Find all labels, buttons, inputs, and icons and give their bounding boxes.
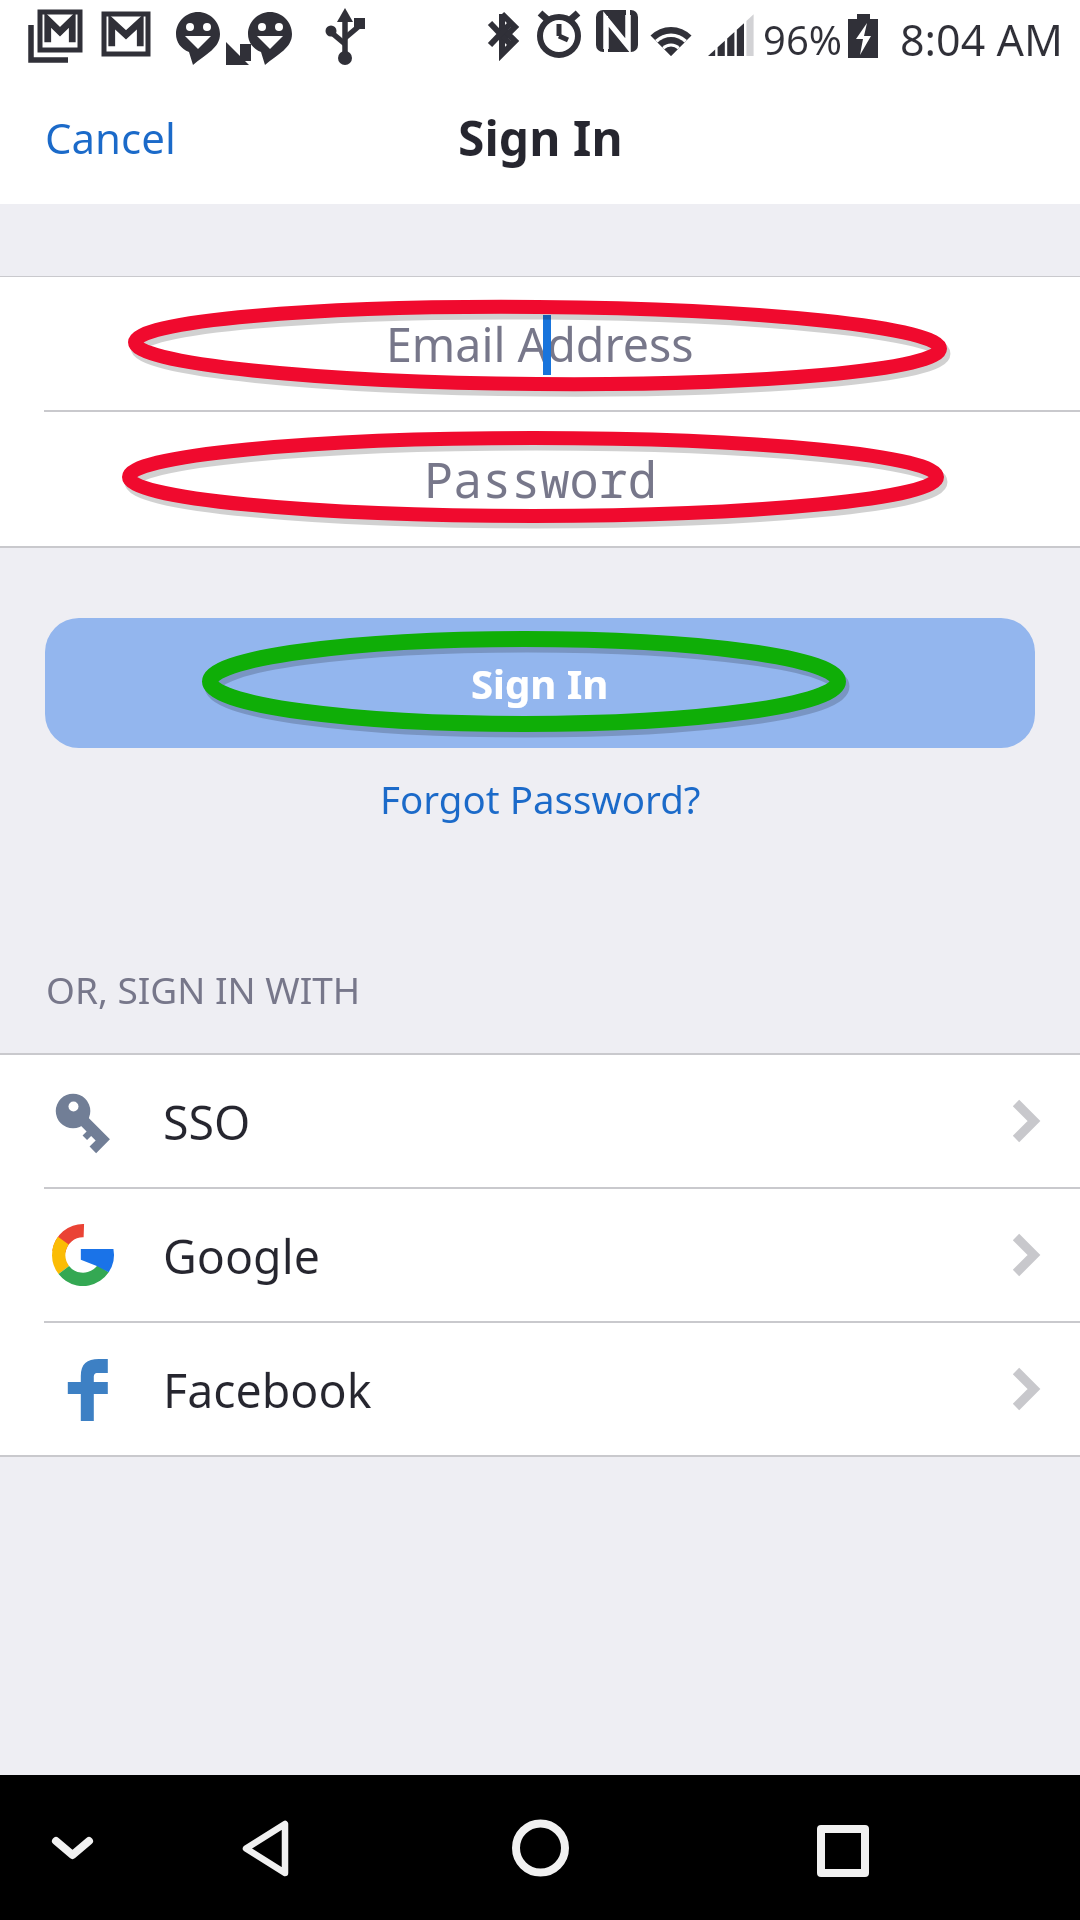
- button[interactable]: Forgot Password?: [0, 748, 1080, 850]
- staticText: Sign In: [471, 656, 609, 710]
- button[interactable]: Hide keyboard: [32, 1807, 114, 1889]
- button[interactable]: Back: [224, 1807, 306, 1889]
- staticText: SSO: [163, 1090, 251, 1153]
- staticText: Password: [424, 446, 657, 512]
- staticText: Facebook: [163, 1358, 372, 1421]
- button[interactable]: Password: [0, 412, 1080, 546]
- button[interactable]: Home: [499, 1807, 581, 1889]
- staticText: Google: [163, 1224, 320, 1287]
- staticText: Forgot Password?: [380, 773, 701, 825]
- button[interactable]: Google: [0, 1189, 1080, 1321]
- staticText: 96%: [763, 12, 842, 66]
- staticText: Cancel: [45, 109, 176, 166]
- staticText: Sign In: [458, 105, 623, 170]
- staticText: 8:04 AM: [900, 10, 1063, 69]
- staticText: OR, SIGN IN WITH: [46, 964, 361, 1014]
- button[interactable]: Cancel: [45, 109, 176, 166]
- button[interactable]: Email Address: [0, 277, 1080, 410]
- button[interactable]: Sign In: [45, 618, 1035, 748]
- staticText: Email Address: [386, 312, 694, 375]
- button[interactable]: Facebook: [0, 1323, 1080, 1455]
- button[interactable]: SSO: [0, 1055, 1080, 1187]
- button[interactable]: Recent apps: [802, 1807, 884, 1889]
